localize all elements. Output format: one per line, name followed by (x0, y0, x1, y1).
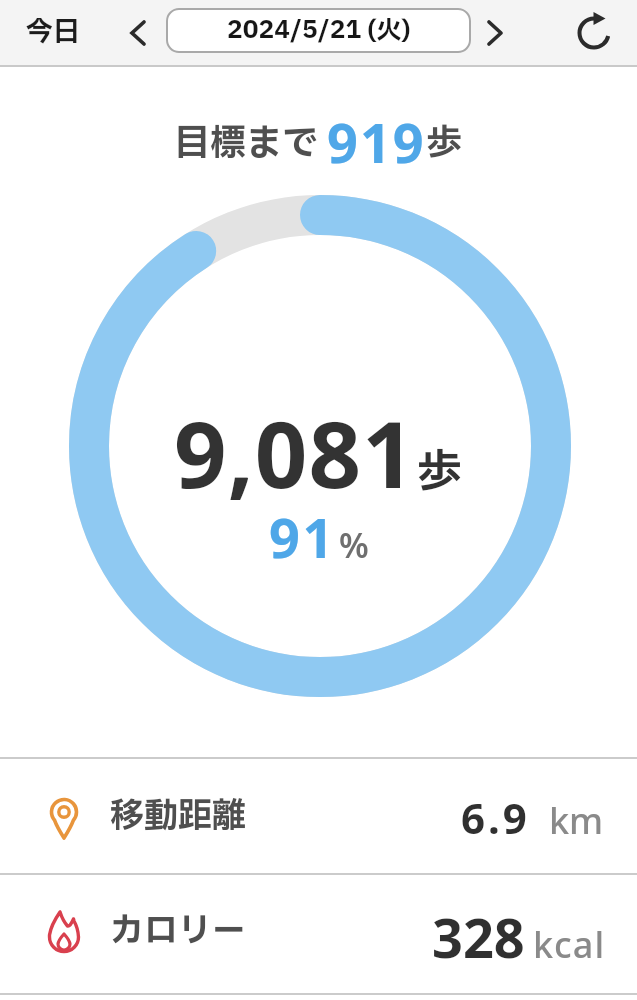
staticText: 歩 (417, 439, 463, 506)
button[interactable] (471, 7, 519, 59)
staticText: km (549, 796, 604, 845)
staticText: 歩 (426, 117, 463, 171)
button[interactable]: 今日 (17, 4, 89, 60)
staticText: 今日 (26, 12, 80, 52)
staticText: 6.9 (461, 789, 530, 846)
staticText: 2024/5/21 (火) (227, 12, 411, 49)
staticText: カロリー (110, 906, 246, 957)
button[interactable] (566, 5, 620, 59)
staticText: 328 (432, 900, 525, 974)
staticText: 91 (269, 500, 336, 574)
staticText: 目標まで (174, 117, 327, 171)
staticText: kcal (533, 920, 606, 969)
button[interactable]: カロリー (0, 875, 637, 994)
button[interactable]: 移動距離 (0, 759, 637, 874)
staticText: 9,081 (174, 390, 416, 515)
staticText: 919 (327, 105, 426, 179)
staticText: % (339, 522, 369, 568)
staticText: 移動距離 (110, 791, 246, 842)
button[interactable] (114, 7, 162, 59)
button[interactable]: 2024/5/21 (火) (166, 8, 471, 53)
